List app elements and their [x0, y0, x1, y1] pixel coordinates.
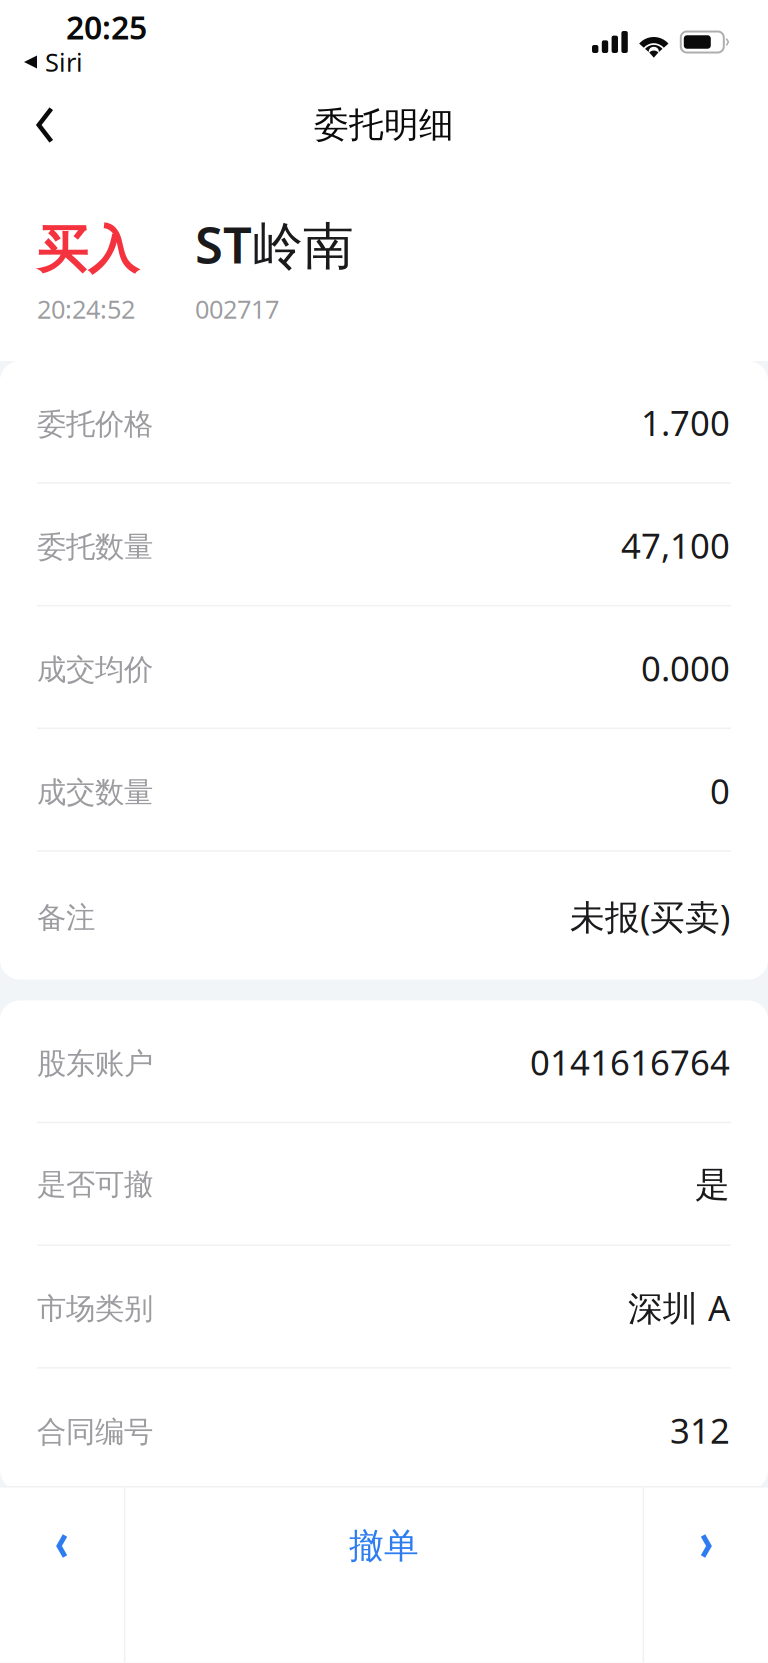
button[interactable]: Back	[0, 83, 90, 167]
staticText: 未报(买卖)	[570, 894, 730, 940]
staticText: 股东账户	[37, 1046, 153, 1082]
staticText: 备注	[37, 900, 95, 936]
staticText: 20:24:52	[37, 292, 135, 326]
staticText: 是	[695, 1163, 730, 1206]
staticText: Siri	[45, 45, 83, 79]
staticText: 0141616764	[530, 1039, 730, 1085]
button[interactable]: Previous order	[0, 1487, 124, 1662]
staticText: 成交数量	[37, 774, 153, 810]
staticText: 002717	[195, 292, 279, 326]
staticText: 成交均价	[37, 652, 153, 688]
staticText: 47,100	[621, 522, 730, 568]
staticText: 委托数量	[37, 529, 153, 565]
button[interactable]: 撤单	[125, 1487, 642, 1662]
staticText: ST岭南	[195, 210, 354, 278]
staticText: 20:25	[66, 6, 147, 48]
staticText: 是否可撤	[37, 1167, 153, 1203]
staticText: 合同编号	[37, 1414, 153, 1450]
staticText: 市场类别	[37, 1291, 153, 1327]
staticText: 买入	[37, 219, 139, 281]
button[interactable]: Next order	[644, 1487, 768, 1662]
staticText: 0	[710, 768, 730, 814]
staticText: 深圳 A	[628, 1284, 730, 1330]
staticText: 0.000	[641, 645, 730, 691]
staticText: 委托明细	[314, 104, 454, 146]
staticText: 312	[670, 1407, 730, 1453]
staticText: 委托价格	[37, 406, 153, 442]
staticText: 撤单	[349, 1525, 419, 1567]
staticText: 1.700	[641, 400, 730, 446]
